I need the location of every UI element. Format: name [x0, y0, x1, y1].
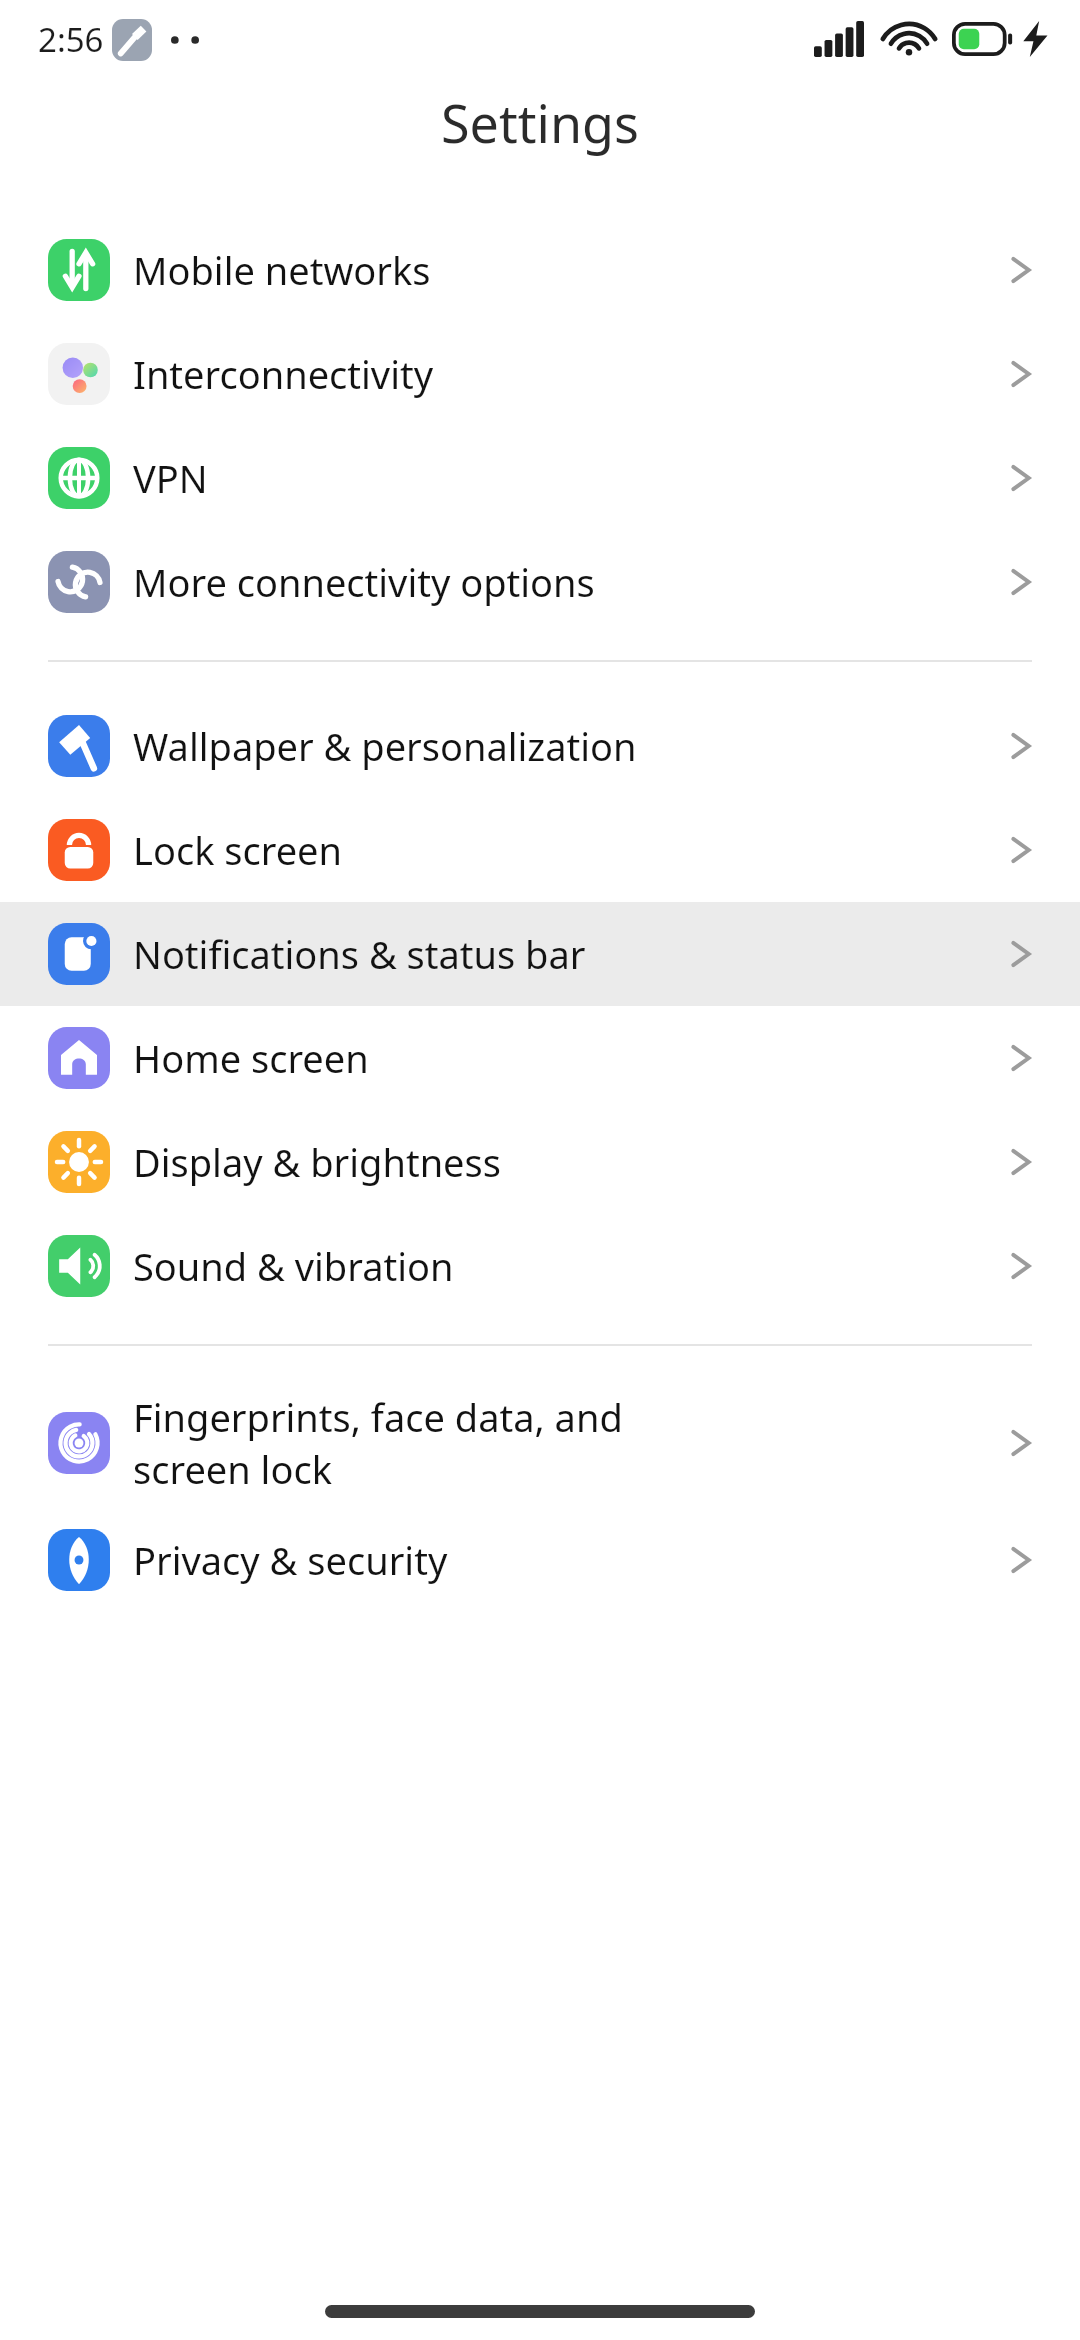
- button[interactable]: Privacy & security: [0, 1508, 1080, 1612]
- button[interactable]: Sound & vibration: [0, 1214, 1080, 1318]
- staticText: Lock screen: [133, 824, 343, 876]
- staticText: More connectivity options: [133, 556, 595, 608]
- staticText: Mobile networks: [133, 244, 431, 296]
- button[interactable]: Interconnectivity: [0, 322, 1080, 426]
- staticText: Home screen: [133, 1032, 369, 1084]
- button[interactable]: Fingerprints, face data, and screen lock: [0, 1378, 1080, 1508]
- staticText: Fingerprints, face data, and screen lock: [133, 1391, 623, 1495]
- staticText: Wallpaper & personalization: [133, 720, 637, 772]
- staticText: Interconnectivity: [133, 348, 434, 400]
- button[interactable]: More connectivity options: [0, 530, 1080, 634]
- staticText: Privacy & security: [133, 1534, 448, 1586]
- staticText: Settings: [441, 87, 639, 158]
- staticText: Display & brightness: [133, 1136, 501, 1188]
- button[interactable]: Home screen: [0, 1006, 1080, 1110]
- button[interactable]: Mobile networks: [0, 218, 1080, 322]
- staticText: VPN: [133, 452, 208, 504]
- button[interactable]: Display & brightness: [0, 1110, 1080, 1214]
- staticText: Notifications & status bar: [133, 928, 586, 980]
- button[interactable]: Wallpaper & personalization: [0, 694, 1080, 798]
- button[interactable]: VPN: [0, 426, 1080, 530]
- button[interactable]: Notifications & status bar: [0, 902, 1080, 1006]
- button[interactable]: Lock screen: [0, 798, 1080, 902]
- staticText: 2:56: [38, 17, 104, 62]
- staticText: Sound & vibration: [133, 1240, 454, 1292]
